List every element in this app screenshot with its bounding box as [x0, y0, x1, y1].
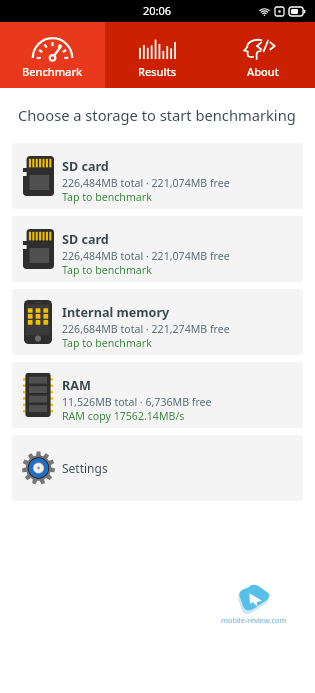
- button[interactable]: Results: [105, 22, 210, 88]
- staticText: mobile-review.com: [221, 615, 287, 625]
- button[interactable]: Internal memory: [12, 289, 303, 355]
- button[interactable]: About: [210, 22, 315, 88]
- button[interactable]: Benchmark: [0, 22, 105, 88]
- staticText: Results: [138, 64, 177, 79]
- staticText: Benchmark: [22, 64, 83, 79]
- button[interactable]: SD card: [12, 143, 303, 209]
- staticText: Tap to benchmark: [62, 190, 152, 204]
- staticText: SD card: [62, 158, 109, 175]
- button[interactable]: SD card: [12, 216, 303, 282]
- button[interactable]: RAM: [12, 362, 303, 428]
- staticText: About: [247, 64, 279, 79]
- staticText: RAM copy 17562.14MB/s: [62, 409, 185, 423]
- staticText: SD card: [62, 231, 109, 248]
- staticText: Internal memory: [62, 304, 170, 321]
- staticText: RAM: [62, 377, 91, 394]
- staticText: 226,684MB total · 221,274MB free: [62, 322, 230, 336]
- staticText: 226,484MB total · 221,074MB free: [62, 176, 230, 190]
- staticText: Tap to benchmark: [62, 336, 152, 350]
- staticText: Tap to benchmark: [62, 263, 152, 277]
- staticText: 20:06: [143, 3, 172, 18]
- staticText: 226,484MB total · 221,074MB free: [62, 249, 230, 263]
- staticText: 11,526MB total · 6,736MB free: [62, 395, 212, 409]
- staticText: Choose a storage to start benchmarking: [18, 105, 296, 125]
- staticText: Settings: [62, 460, 108, 476]
- button[interactable]: Settings: [12, 435, 303, 501]
